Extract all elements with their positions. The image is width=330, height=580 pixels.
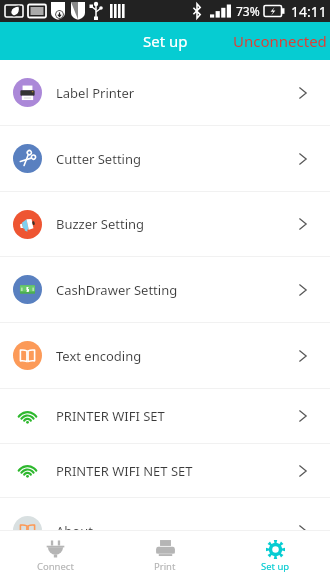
button[interactable]: Text encoding [0, 323, 330, 389]
button[interactable]: PRINTER WIFI NET SET [0, 444, 330, 498]
staticText: Connect [37, 560, 74, 573]
staticText: Print [154, 560, 176, 573]
staticText: 14:11 [291, 2, 327, 21]
staticText: PRINTER WIFI NET SET [56, 462, 193, 480]
button[interactable]: Set up [220, 539, 330, 573]
button[interactable]: PRINTER WIFI SET [0, 389, 330, 444]
staticText: Cutter Setting [56, 150, 141, 168]
button[interactable]: Connect [0, 539, 110, 573]
button[interactable]: Print [110, 539, 220, 573]
staticText: CashDrawer Setting [56, 281, 178, 299]
button[interactable]: Label Printer [0, 60, 330, 126]
button[interactable]: CashDrawer Setting [0, 257, 330, 323]
button[interactable]: Unconnected [230, 31, 330, 51]
staticText: Text encoding [56, 347, 142, 365]
staticText: Label Printer [56, 84, 135, 102]
button[interactable]: Cutter Setting [0, 126, 330, 192]
staticText: Buzzer Setting [56, 215, 145, 233]
button[interactable]: Buzzer Setting [0, 192, 330, 257]
staticText: About [56, 522, 93, 540]
staticText: 73% [236, 3, 260, 19]
staticText: Unconnected [233, 31, 327, 51]
button[interactable]: About [0, 498, 330, 564]
staticText: PRINTER WIFI SET [56, 407, 165, 425]
staticText: Set up [143, 31, 188, 51]
staticText: Set up [261, 560, 290, 573]
